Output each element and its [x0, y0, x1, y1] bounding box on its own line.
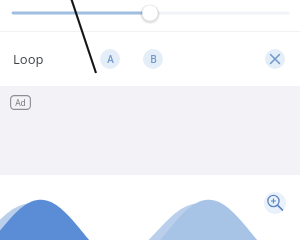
button[interactable]: Loop [13, 50, 44, 68]
staticText: B [150, 52, 157, 66]
button[interactable]: Ad [0, 86, 300, 175]
staticText: A [107, 52, 114, 66]
staticText: Ad [10, 97, 31, 109]
staticText: Loop [13, 50, 44, 68]
button[interactable]: A [100, 49, 120, 69]
button[interactable]: Clear loop [265, 49, 285, 69]
button[interactable]: B [143, 49, 163, 69]
button[interactable]: Zoom in [264, 192, 286, 214]
button[interactable]: Playback position [0, 0, 300, 31]
